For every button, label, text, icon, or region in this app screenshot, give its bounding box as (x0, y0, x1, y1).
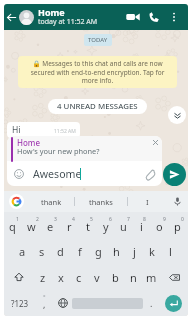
button[interactable]: Google (9, 194, 24, 209)
staticText: 4 UNREAD MESSAGES (57, 101, 138, 112)
staticText: 3 (54, 216, 57, 223)
button[interactable]: ° (36, 290, 53, 316)
button[interactable]: p (170, 212, 188, 238)
staticText: How's your new phone? (17, 146, 100, 156)
staticText: y (103, 219, 109, 234)
staticText: p (174, 219, 181, 234)
button[interactable]: Attach (142, 166, 158, 182)
staticText: z (40, 270, 46, 285)
button[interactable]: Voice input (166, 191, 188, 212)
button[interactable]: n (124, 264, 142, 290)
staticText: 7 (127, 216, 130, 223)
staticText: 9 (163, 216, 166, 223)
staticText: f (78, 244, 82, 259)
button[interactable]: o (152, 212, 170, 238)
button[interactable]: h (107, 238, 125, 264)
button[interactable]: Back (4, 6, 19, 28)
staticText: Home (17, 137, 41, 148)
button[interactable]: c (70, 264, 88, 290)
button[interactable]: Shift (4, 264, 33, 290)
staticText: . (150, 297, 153, 309)
staticText: k (149, 244, 155, 259)
staticText: 5 (90, 216, 93, 223)
button[interactable]: m (142, 264, 160, 290)
staticText: Hi (12, 124, 21, 136)
button[interactable]: Enter (165, 295, 182, 312)
staticText: q (9, 219, 16, 234)
button[interactable]: k (143, 238, 161, 264)
button[interactable]: y (98, 212, 116, 238)
button[interactable]: Cancel reply (149, 136, 162, 149)
staticText: 2 (36, 216, 39, 223)
button[interactable]: a (13, 238, 32, 264)
button[interactable]: r (61, 212, 80, 238)
staticText: 11:52 AM (54, 128, 76, 135)
staticText: TODAY (88, 36, 108, 44)
button[interactable]: x (52, 264, 70, 290)
staticText: l (169, 244, 172, 259)
button[interactable]: Change language (53, 290, 72, 316)
button[interactable]: . (143, 290, 159, 316)
staticText: e (47, 219, 54, 234)
button[interactable]: ?123 (4, 290, 36, 316)
staticText: w (27, 219, 36, 234)
button[interactable]: w (23, 212, 42, 238)
button[interactable]: Video call (123, 6, 142, 28)
button[interactable]: u (116, 212, 134, 238)
staticText: d (57, 244, 64, 259)
button[interactable]: i (134, 212, 152, 238)
button[interactable]: f (70, 238, 89, 264)
staticText: h (113, 244, 120, 259)
staticText: 6 (109, 216, 112, 223)
staticText: Home (38, 6, 65, 18)
button[interactable]: Emoji (11, 166, 27, 182)
staticText: x (58, 270, 64, 285)
staticText: thank (41, 197, 62, 207)
staticText: I (146, 197, 149, 207)
staticText: Awesome (33, 167, 82, 181)
staticText: r (67, 219, 72, 234)
staticText: o (156, 219, 163, 234)
staticText: a (19, 244, 26, 259)
button[interactable]: e (42, 212, 61, 238)
button[interactable]: s (32, 238, 51, 264)
button[interactable]: g (89, 238, 107, 264)
button[interactable]: Scroll to bottom (168, 106, 186, 124)
staticText: n (130, 270, 137, 285)
staticText: ?123 (11, 298, 29, 309)
staticText: b (112, 270, 119, 285)
button[interactable]: v (88, 264, 106, 290)
staticText: v (94, 270, 100, 285)
staticText: 🔒 Messages to this chat and calls are no… (25, 59, 170, 85)
button[interactable]: z (33, 264, 52, 290)
staticText: , (43, 298, 46, 310)
button[interactable]: d (51, 238, 70, 264)
staticText: thanks (89, 197, 113, 207)
button[interactable]: 🔒 Messages to this chat and calls are no… (18, 56, 177, 88)
staticText: c (76, 270, 82, 285)
staticText: 0 (181, 216, 184, 223)
staticText: today at 11:52 AM (38, 17, 98, 27)
staticText: g (95, 244, 102, 259)
button[interactable]: b (106, 264, 124, 290)
button[interactable]: l (161, 238, 179, 264)
button[interactable]: Call (142, 6, 165, 28)
staticText: 8 (143, 216, 146, 223)
button[interactable]: Backspace (160, 264, 188, 290)
button[interactable]: j (125, 238, 143, 264)
button[interactable]: 4 UNREAD MESSAGES (48, 99, 147, 114)
button[interactable]: q (4, 212, 23, 238)
staticText: t (86, 219, 90, 234)
button[interactable]: t (80, 212, 98, 238)
button[interactable]: More options (165, 6, 182, 28)
staticText: 4 (72, 216, 75, 223)
button[interactable]: TODAY (84, 34, 112, 46)
staticText: m (146, 270, 157, 285)
staticText: u (120, 219, 127, 234)
staticText: i (140, 219, 143, 234)
staticText: j (133, 244, 136, 259)
staticText: ° (43, 293, 46, 301)
staticText: s (39, 244, 45, 259)
button[interactable]: Send (163, 163, 186, 186)
